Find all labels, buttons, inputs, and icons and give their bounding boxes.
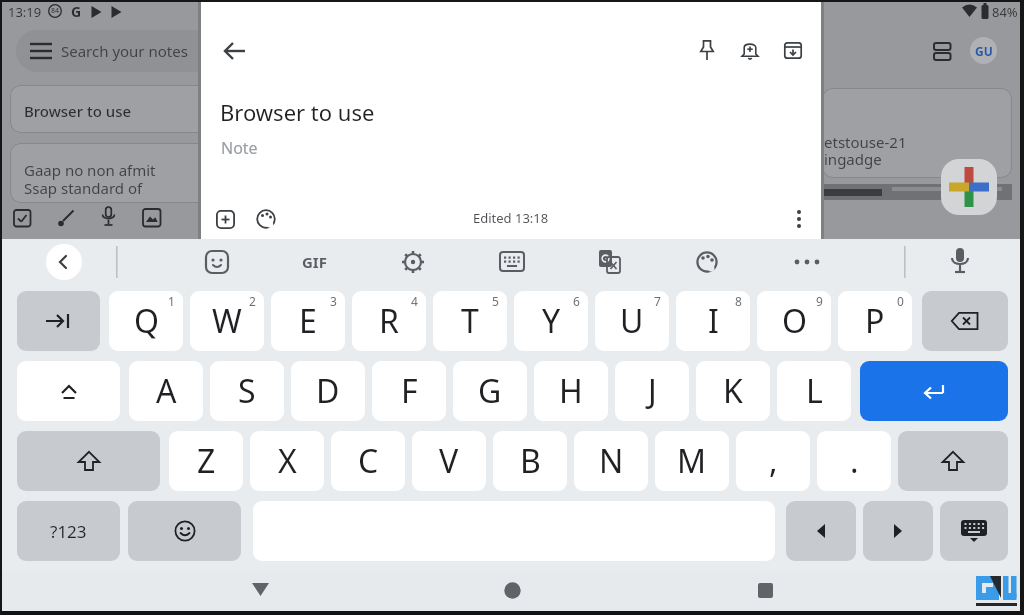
button[interactable]: J xyxy=(615,361,689,421)
button[interactable] xyxy=(786,501,856,561)
button[interactable] xyxy=(787,207,811,231)
staticText: Search your notes xyxy=(61,41,188,61)
staticText: 7 xyxy=(654,293,661,309)
button[interactable] xyxy=(898,431,1008,491)
staticText: H xyxy=(559,369,583,413)
staticText: C xyxy=(358,439,379,483)
staticText: 6 xyxy=(573,293,580,309)
button[interactable] xyxy=(220,36,250,66)
button[interactable]: Z xyxy=(169,431,243,491)
staticText: P xyxy=(865,299,885,343)
button[interactable]: X xyxy=(250,431,324,491)
button[interactable]: Gaap no non afmit xyxy=(10,143,310,203)
staticText: G xyxy=(71,2,82,21)
staticText: 13:19 xyxy=(8,3,42,21)
button[interactable]: , xyxy=(736,431,810,491)
staticText: O xyxy=(782,299,807,343)
staticText: Browser to use xyxy=(24,101,132,121)
button[interactable]: Q xyxy=(109,291,183,351)
staticText: 3 xyxy=(330,293,337,309)
staticText: GIF xyxy=(302,252,327,272)
button[interactable]: U xyxy=(595,291,669,351)
button[interactable]: R xyxy=(352,291,426,351)
staticText: K xyxy=(723,369,743,413)
staticText: R xyxy=(379,299,399,343)
button[interactable]: T xyxy=(433,291,507,351)
button[interactable]: P xyxy=(838,291,912,351)
staticText: Z xyxy=(197,439,216,483)
button[interactable] xyxy=(922,291,1008,351)
staticText: G xyxy=(478,369,502,413)
staticText: Gaap no non afmit xyxy=(24,160,156,180)
button[interactable]: B xyxy=(493,431,567,491)
button[interactable] xyxy=(863,501,933,561)
button[interactable] xyxy=(860,361,1008,421)
button[interactable] xyxy=(17,291,100,351)
staticText: . xyxy=(850,439,859,483)
staticText: , xyxy=(769,439,778,483)
staticText: 4 xyxy=(411,293,418,309)
button[interactable]: S xyxy=(210,361,284,421)
button[interactable] xyxy=(254,207,278,231)
button[interactable]: W xyxy=(190,291,264,351)
staticText: 8 xyxy=(735,293,742,309)
button[interactable] xyxy=(692,35,722,65)
button[interactable]: A xyxy=(129,361,203,421)
button[interactable] xyxy=(17,431,160,491)
staticText: 0 xyxy=(897,293,904,309)
staticText: Y xyxy=(542,299,561,343)
staticText: E xyxy=(299,299,317,343)
button[interactable] xyxy=(941,159,997,215)
staticText: I xyxy=(708,299,719,343)
staticText: L xyxy=(806,369,823,413)
button[interactable]: . xyxy=(817,431,891,491)
staticText: N xyxy=(599,439,624,483)
button[interactable]: V xyxy=(412,431,486,491)
button[interactable] xyxy=(46,244,82,280)
button[interactable] xyxy=(16,30,376,72)
staticText: W xyxy=(212,299,242,343)
staticText: 84% xyxy=(992,3,1018,21)
staticText: Browser to use xyxy=(220,97,375,127)
button[interactable]: K xyxy=(696,361,770,421)
button[interactable]: O xyxy=(757,291,831,351)
staticText: Edited 13:18 xyxy=(473,209,549,227)
button[interactable]: D xyxy=(291,361,365,421)
staticText: U xyxy=(620,299,644,343)
button[interactable] xyxy=(735,35,765,65)
staticText: A xyxy=(156,369,177,413)
button[interactable]: L xyxy=(777,361,851,421)
button[interactable]: G xyxy=(453,361,527,421)
button[interactable]: Browser to use xyxy=(10,85,310,133)
button[interactable]: Y xyxy=(514,291,588,351)
button[interactable]: I xyxy=(676,291,750,351)
staticText: ?123 xyxy=(50,520,87,543)
staticText: Note xyxy=(221,137,258,159)
button[interactable]: M xyxy=(655,431,729,491)
staticText: ingadge xyxy=(824,149,882,169)
button[interactable] xyxy=(778,35,808,65)
button[interactable]: C xyxy=(331,431,405,491)
button[interactable]: ?123 xyxy=(17,501,120,561)
button[interactable]: GU xyxy=(970,37,997,64)
button[interactable] xyxy=(246,576,274,604)
button[interactable] xyxy=(751,576,779,604)
staticText: S xyxy=(238,369,256,413)
staticText: D xyxy=(316,369,340,413)
button[interactable]: F xyxy=(372,361,446,421)
staticText: etstouse-21 xyxy=(824,132,907,152)
staticText: M xyxy=(677,439,707,483)
staticText: GU xyxy=(975,43,993,59)
staticText: B xyxy=(520,439,541,483)
button[interactable]: H xyxy=(534,361,608,421)
staticText: 84 xyxy=(51,6,60,16)
button[interactable] xyxy=(17,361,120,421)
staticText: J xyxy=(648,369,657,413)
button[interactable]: E xyxy=(271,291,345,351)
button[interactable] xyxy=(940,501,1008,561)
button[interactable] xyxy=(213,207,237,231)
button[interactable] xyxy=(498,576,526,604)
button[interactable] xyxy=(128,501,241,561)
button[interactable]: N xyxy=(574,431,648,491)
